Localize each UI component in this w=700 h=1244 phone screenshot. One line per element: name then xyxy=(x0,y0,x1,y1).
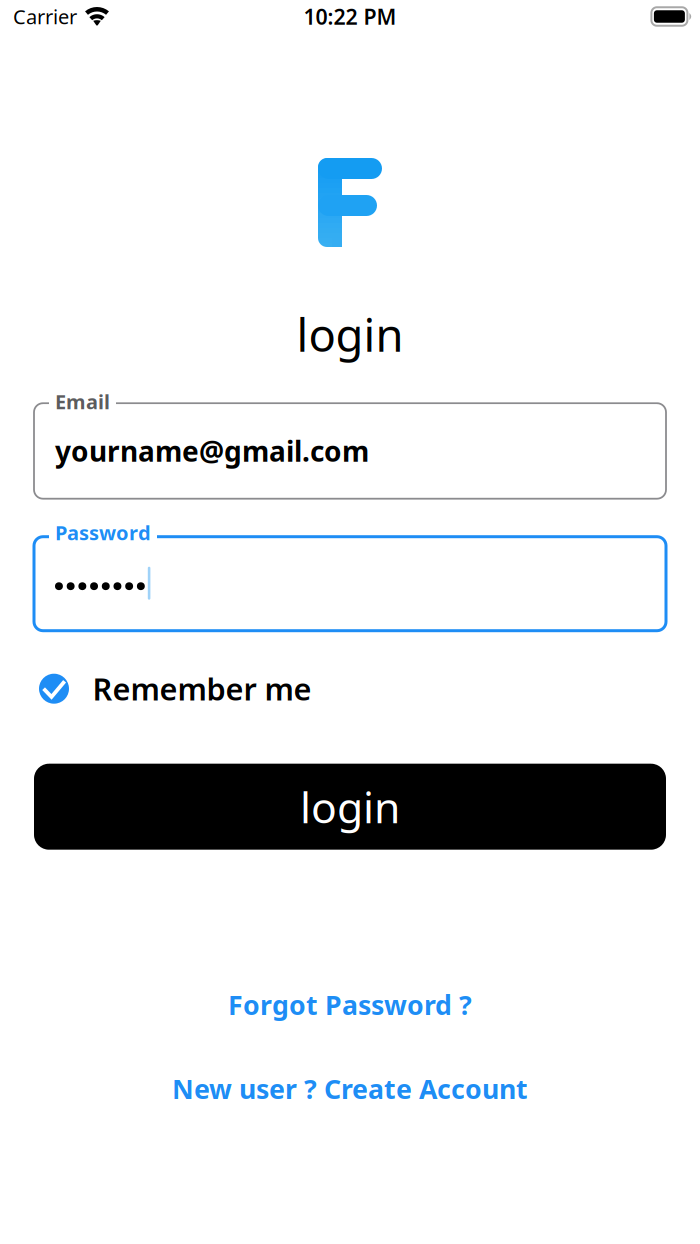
button[interactable]: yourname@gmail.com xyxy=(0,403,700,499)
staticText: login xyxy=(300,778,400,835)
button[interactable]: Password xyxy=(0,537,700,631)
staticText: Email xyxy=(55,388,110,415)
button[interactable]: New user ? Create Account xyxy=(172,1075,528,1103)
staticText: login xyxy=(296,304,403,364)
staticText: Password xyxy=(55,519,151,546)
staticText: New user ? Create Account xyxy=(172,1071,528,1106)
staticText: Remember me xyxy=(92,668,311,709)
button[interactable]: login xyxy=(0,764,700,850)
staticText: Forgot Password ? xyxy=(228,987,472,1022)
button[interactable]: Remember me xyxy=(0,673,700,705)
staticText: Carrier xyxy=(13,3,77,30)
button[interactable]: Forgot Password ? xyxy=(228,991,472,1019)
staticText: 10:22 PM xyxy=(303,2,396,31)
staticText: yourname@gmail.com xyxy=(55,432,369,470)
